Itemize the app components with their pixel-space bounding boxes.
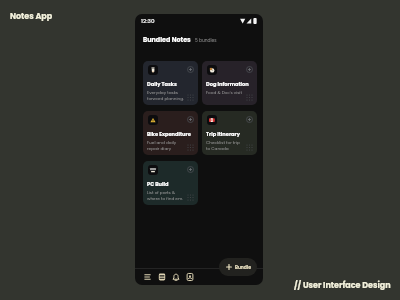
staticText: 12:30 — [141, 17, 155, 25]
staticText: Bundle — [235, 264, 251, 270]
button[interactable]: Add note — [187, 166, 194, 173]
staticText: Checklist for trip to Canada — [206, 140, 240, 152]
staticText: List of parts & where to find em. — [147, 190, 184, 202]
staticText: PC Build — [147, 181, 169, 188]
button[interactable]: Profile — [184, 271, 195, 282]
button[interactable]: Bundles — [156, 271, 167, 282]
button[interactable]: Add note — [246, 116, 253, 123]
button[interactable]: Notes list — [142, 271, 153, 282]
button[interactable]: Daily Tasks — [143, 61, 198, 105]
button[interactable]: Bundle — [219, 258, 257, 276]
button[interactable]: Add note — [187, 116, 194, 123]
staticText: Trip Itinerary — [206, 131, 240, 138]
button[interactable]: Notifications — [170, 271, 181, 282]
staticText: Food & Doc's visit — [206, 90, 242, 96]
staticText: Daily Tasks — [147, 81, 177, 88]
button[interactable]: Add note — [246, 66, 253, 73]
staticText: Dog Information — [206, 81, 249, 88]
button[interactable]: // User Interface Design — [294, 280, 391, 291]
button[interactable]: Dog Information — [202, 61, 257, 105]
button[interactable]: PC Build — [143, 161, 198, 205]
button[interactable]: Notes App — [10, 11, 53, 22]
button[interactable]: Trip Itinerary — [202, 111, 257, 155]
staticText: // User Interface Design — [294, 280, 391, 291]
staticText: Everyday tasks forward planning. — [147, 90, 184, 102]
button[interactable]: Bike Expenditure — [143, 111, 198, 155]
staticText: Bike Expenditure — [147, 131, 191, 138]
staticText: Notes App — [10, 11, 53, 22]
staticText: Fuel and daily repair diary — [147, 140, 177, 152]
staticText: Bundled Notes — [143, 35, 191, 44]
button[interactable]: Add note — [187, 66, 194, 73]
staticText: 5 bundles — [195, 37, 217, 43]
